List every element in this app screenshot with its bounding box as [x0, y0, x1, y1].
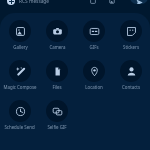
staticText: Magic Compose [3, 84, 37, 90]
button[interactable]: Camera [46, 20, 68, 50]
button[interactable]: Files [46, 60, 68, 90]
button[interactable]: Schedule Send [4, 100, 35, 130]
button[interactable]: Selfie GIF [46, 100, 68, 130]
button[interactable]: Location [83, 60, 105, 90]
button[interactable]: Emoji [89, 0, 97, 5]
button[interactable]: Magic Compose [3, 60, 37, 90]
staticText: Camera [49, 44, 66, 50]
button[interactable]: Send [130, 0, 148, 4]
button[interactable]: Gallery [9, 20, 31, 50]
staticText: Stickers [123, 44, 139, 50]
staticText: Gallery [13, 44, 28, 50]
button[interactable]: Add attachment [7, 0, 15, 5]
staticText: RCS message [19, 0, 50, 5]
staticText: Schedule Send [4, 124, 35, 130]
staticText: Contacts [122, 84, 140, 90]
button[interactable]: Stickers [120, 20, 142, 50]
staticText: GIFs [89, 44, 99, 50]
staticText: Selfie GIF [47, 124, 67, 130]
button[interactable]: Contacts [120, 60, 142, 90]
button[interactable]: Gallery [108, 0, 116, 5]
button[interactable]: GIFs [83, 20, 105, 50]
staticText: Files [52, 84, 62, 90]
staticText: Location [85, 84, 103, 90]
